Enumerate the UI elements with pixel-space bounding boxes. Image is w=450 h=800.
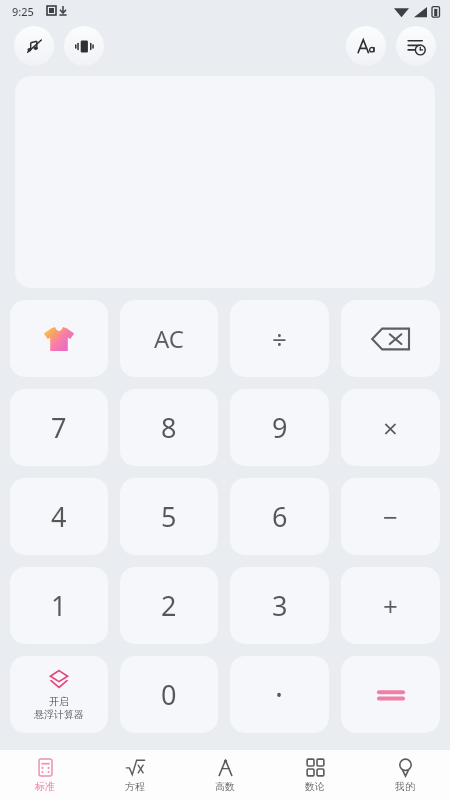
staticText: 2 — [161, 587, 177, 624]
staticText: 3 — [272, 587, 288, 624]
button[interactable]: Equals — [341, 656, 440, 733]
button[interactable]: 3 — [230, 567, 329, 644]
staticText: 9:25 — [12, 4, 34, 19]
staticText: − — [383, 499, 398, 534]
button[interactable]: ÷ — [230, 300, 329, 377]
button[interactable]: Floating calculator — [10, 656, 108, 733]
button[interactable]: + — [341, 567, 440, 644]
staticText: 数论 — [305, 780, 325, 793]
staticText: 1 — [51, 587, 67, 624]
button[interactable]: 数论 — [270, 750, 360, 800]
staticText: 7 — [51, 409, 67, 446]
staticText: 高数 — [215, 780, 235, 793]
button[interactable]: History — [396, 26, 436, 66]
staticText: + — [383, 588, 398, 623]
button[interactable]: 4 — [10, 478, 108, 555]
staticText: 我的 — [395, 780, 415, 793]
staticText: 8 — [161, 409, 177, 446]
staticText: · — [275, 674, 284, 715]
button[interactable]: 0 — [120, 656, 218, 733]
button[interactable]: Backspace — [341, 300, 440, 377]
button[interactable]: 7 — [10, 389, 108, 466]
button[interactable]: Theme — [10, 300, 108, 377]
button[interactable]: 2 — [120, 567, 218, 644]
button[interactable]: Font size — [346, 26, 386, 66]
button[interactable]: − — [341, 478, 440, 555]
staticText: 方程 — [125, 780, 145, 793]
staticText: 标准 — [35, 780, 55, 793]
staticText: × — [383, 410, 398, 445]
staticText: AC — [154, 322, 185, 355]
staticText: 0 — [161, 676, 177, 713]
button[interactable]: · — [230, 656, 329, 733]
button[interactable]: 9 — [230, 389, 329, 466]
button[interactable]: 6 — [230, 478, 329, 555]
button[interactable]: Vibration — [64, 26, 104, 66]
staticText: 9 — [272, 409, 288, 446]
button[interactable]: 高数 — [180, 750, 270, 800]
staticText: 5 — [161, 498, 177, 535]
staticText: 6 — [272, 498, 288, 535]
button[interactable]: 方程 — [90, 750, 180, 800]
staticText: ÷ — [272, 321, 287, 356]
button[interactable]: 标准 — [0, 750, 90, 800]
button[interactable]: × — [341, 389, 440, 466]
button[interactable]: 8 — [120, 389, 218, 466]
button[interactable]: 1 — [10, 567, 108, 644]
staticText: 4 — [51, 498, 67, 535]
button[interactable]: 5 — [120, 478, 218, 555]
button[interactable]: AC — [120, 300, 218, 377]
staticText: 悬浮计算器 — [34, 708, 84, 721]
button[interactable]: 我的 — [360, 750, 450, 800]
button[interactable]: Sound — [14, 26, 54, 66]
staticText: 开启 — [49, 695, 69, 708]
